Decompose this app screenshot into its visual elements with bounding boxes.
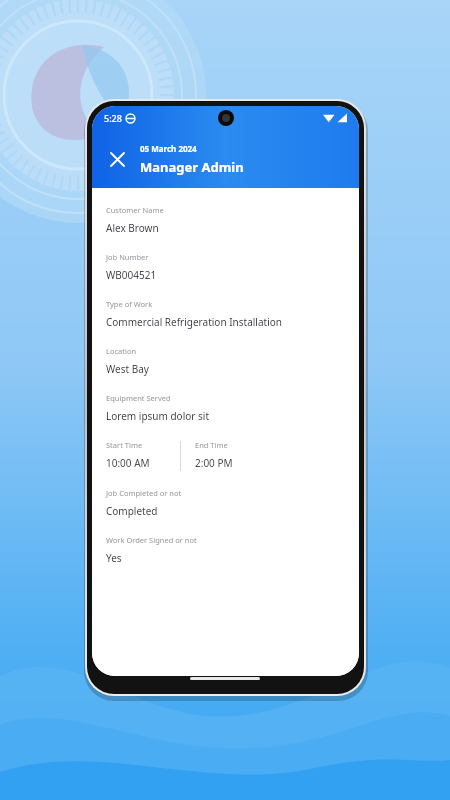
staticText: Equipment Served [106, 393, 171, 403]
staticText: 05 March 2024 [140, 143, 197, 154]
staticText: Location [106, 346, 137, 356]
staticText: Lorem ipsum dolor sit [106, 409, 209, 423]
staticText: End Time [195, 440, 228, 450]
staticText: 10:00 AM [106, 456, 150, 470]
staticText: Type of Work [106, 299, 153, 309]
staticText: 5:28 [104, 112, 122, 124]
staticText: Manager Admin [140, 158, 244, 176]
staticText: Job Number [106, 252, 149, 262]
staticText: Completed [106, 504, 158, 518]
staticText: Job Completed or not [106, 488, 182, 498]
staticText: Start Time [106, 440, 143, 450]
staticText: Work Order Signed or not [106, 535, 197, 545]
staticText: Alex Brown [106, 221, 159, 235]
staticText: Customer Name [106, 205, 164, 215]
staticText: Commercial Refrigeration Installation [106, 315, 282, 329]
button[interactable]: Close [100, 142, 134, 176]
staticText: West Bay [106, 362, 149, 376]
staticText: 2:00 PM [195, 456, 233, 470]
staticText: Yes [106, 551, 122, 565]
staticText: WB004521 [106, 268, 157, 282]
